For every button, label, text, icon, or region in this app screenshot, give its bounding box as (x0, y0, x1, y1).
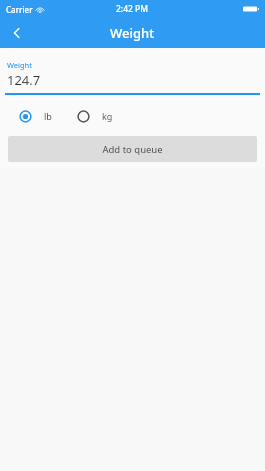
staticText: lb (44, 110, 52, 122)
button[interactable]: lb (19, 105, 52, 127)
staticText: Weight (7, 60, 32, 70)
staticText: Add to queue (102, 143, 163, 156)
button[interactable]: Back (0, 18, 34, 48)
staticText: 2:42 PM (116, 3, 149, 15)
staticText: 124.7 (7, 71, 41, 89)
staticText: Weight (110, 24, 155, 42)
button[interactable]: 124.7 (0, 71, 265, 89)
staticText: Carrier (6, 4, 33, 15)
staticText: kg (102, 110, 113, 122)
button[interactable]: kg (77, 105, 113, 127)
button[interactable]: Add to queue (8, 136, 257, 162)
